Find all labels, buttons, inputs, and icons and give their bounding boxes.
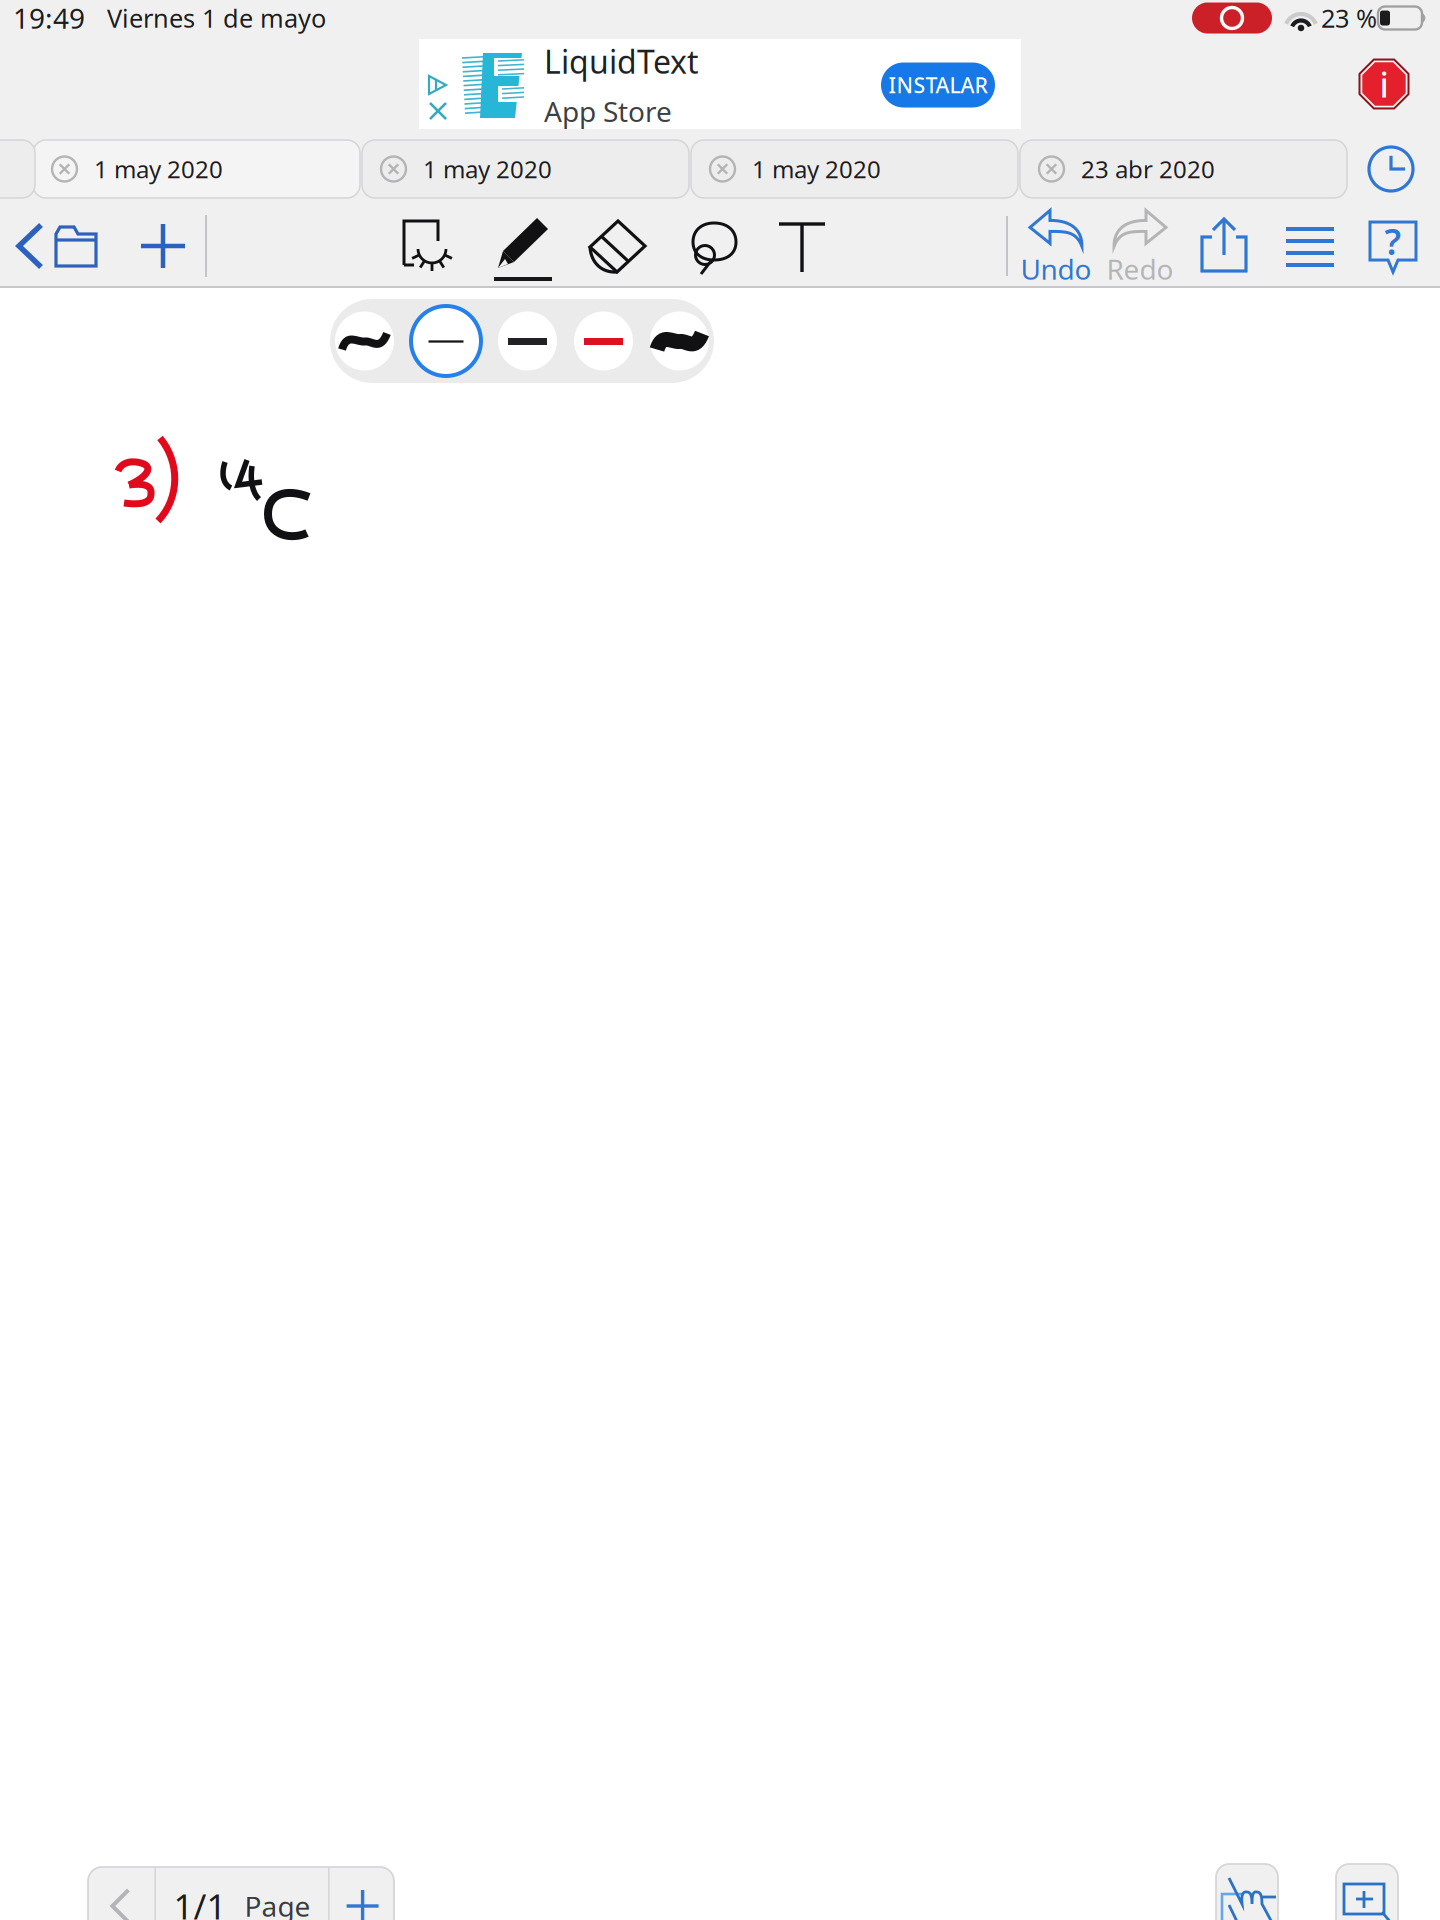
button[interactable]: Add zoom box: [1336, 1864, 1398, 1920]
button[interactable]: Pen preset: [650, 304, 709, 378]
button[interactable]: Back: [18, 224, 42, 268]
staticText: 1 may 2020: [752, 153, 881, 185]
button[interactable]: Handwriting zoom: [1216, 1864, 1278, 1920]
button[interactable]: New page: [140, 223, 186, 269]
button[interactable]: Pen preset: [574, 304, 633, 378]
button[interactable]: Pen preset: [411, 304, 481, 378]
button[interactable]: Pen preset: [498, 304, 557, 378]
button[interactable]: 1 may 2020: [33, 140, 360, 198]
button[interactable]: 1/1: [156, 1867, 328, 1920]
staticText: 1 may 2020: [423, 153, 552, 185]
button[interactable]: Ad information: [1356, 56, 1412, 112]
staticText: INSTALAR: [888, 71, 987, 99]
staticText: 23 %: [1321, 1, 1377, 35]
button[interactable]: Share: [1200, 217, 1248, 273]
staticText: Viernes 1 de mayo: [107, 1, 326, 35]
button[interactable]: Redo: [1085, 210, 1195, 286]
staticText: App Store: [544, 93, 672, 130]
button[interactable]: Pen preset: [335, 304, 394, 378]
button[interactable]: Text box: [778, 222, 826, 274]
button[interactable]: Eraser: [588, 219, 648, 277]
button[interactable]: Previous page: [86, 1867, 154, 1920]
button[interactable]: Undo: [1001, 210, 1111, 286]
staticText: ?: [1384, 217, 1401, 265]
button[interactable]: 1 may 2020: [691, 140, 1018, 198]
staticText: Redo: [1106, 250, 1173, 288]
staticText: Undo: [1020, 250, 1091, 288]
button[interactable]: Page outline: [1285, 226, 1335, 268]
button[interactable]: Recent documents: [1369, 147, 1413, 191]
staticText: 23 abr 2020: [1081, 153, 1215, 185]
staticText: 1/1: [173, 1883, 226, 1920]
staticText: LiquidText: [544, 40, 699, 83]
button[interactable]: Help: [1368, 220, 1418, 274]
staticText: i: [1379, 61, 1388, 107]
button[interactable]: Read only: [402, 219, 458, 277]
button[interactable]: Documents: [54, 222, 98, 270]
staticText: 19:49: [13, 0, 85, 37]
button[interactable]: 1 may 2020: [362, 140, 689, 198]
staticText: 1 may 2020: [94, 153, 223, 185]
staticText: Page: [244, 1887, 310, 1920]
button[interactable]: 23 abr 2020: [1020, 140, 1347, 198]
button[interactable]: Pen: [494, 213, 552, 283]
button[interactable]: Add page: [330, 1867, 396, 1920]
button[interactable]: Lasso select: [684, 219, 742, 277]
button[interactable]: INSTALAR: [881, 62, 995, 107]
